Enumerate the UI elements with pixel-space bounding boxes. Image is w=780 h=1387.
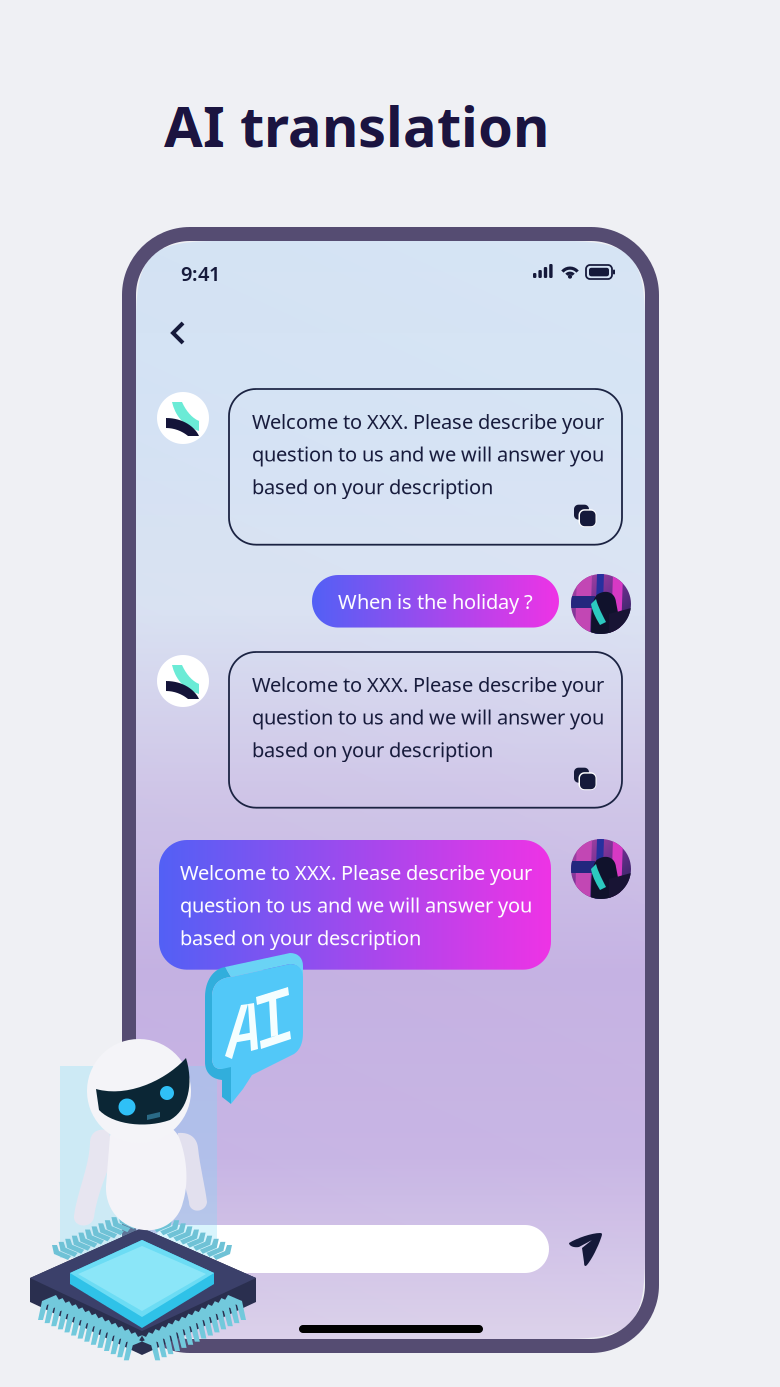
staticText: When is the holiday ?: [338, 588, 533, 615]
staticText: Welcome to XXX. Please describe your que…: [252, 671, 604, 763]
staticText: Welcome to XXX. Please describe your que…: [180, 859, 532, 951]
button[interactable]: Back: [170, 321, 187, 346]
staticText: AI translation: [164, 88, 549, 162]
button[interactable]: Send: [568, 1232, 602, 1267]
staticText: Welcome to XXX. Please describe your que…: [252, 408, 604, 500]
staticText: 9:41: [181, 260, 220, 287]
